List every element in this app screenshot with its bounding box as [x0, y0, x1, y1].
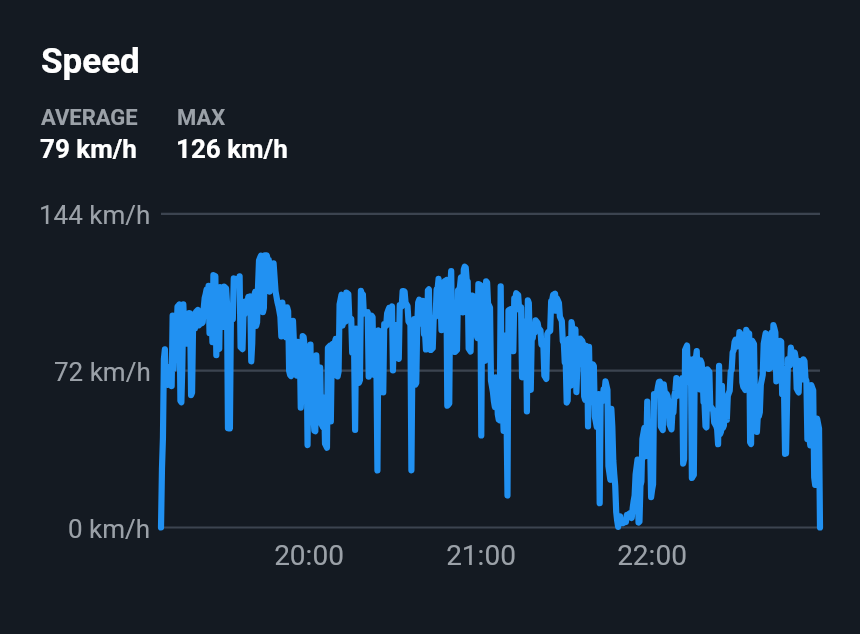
button[interactable]: Speed over time chart [0, 0, 860, 634]
staticText: 126 km/h [176, 134, 288, 164]
staticText: 72 km/h [54, 357, 151, 387]
staticText: Speed [41, 41, 140, 82]
staticText: 22:00 [617, 539, 687, 572]
button[interactable]: MAX [165, 96, 321, 169]
staticText: MAX [177, 105, 226, 131]
staticText: 79 km/h [40, 134, 137, 164]
button[interactable]: AVERAGE [29, 96, 185, 169]
staticText: 144 km/h [39, 200, 151, 230]
staticText: AVERAGE [41, 105, 138, 131]
button[interactable]: Speed [29, 30, 152, 88]
staticText: 21:00 [446, 539, 516, 572]
staticText: 0 km/h [68, 514, 151, 544]
staticText: 20:00 [274, 539, 344, 572]
